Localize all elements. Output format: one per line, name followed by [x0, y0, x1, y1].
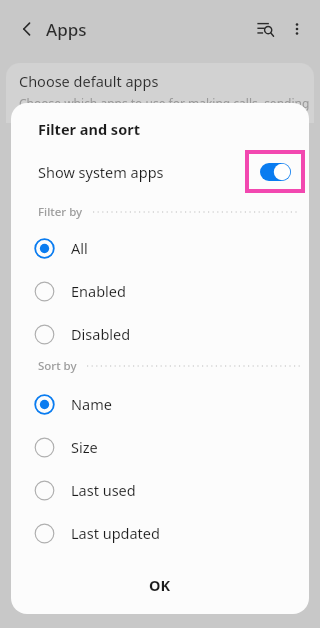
staticText: OK — [149, 575, 171, 595]
button[interactable]: Size — [11, 426, 309, 468]
staticText: Show system apps — [38, 162, 164, 182]
button[interactable]: Name — [11, 383, 309, 425]
button[interactable]: OK — [11, 565, 309, 605]
staticText: Apps — [46, 18, 87, 41]
staticText: Enabled — [71, 281, 126, 301]
staticText: Filter and sort — [38, 119, 140, 139]
button[interactable]: Back — [12, 14, 42, 44]
staticText: Disabled — [71, 324, 131, 344]
staticText: Sort by — [38, 358, 77, 374]
button[interactable]: Show system apps — [11, 151, 309, 193]
staticText: Choose which apps to use for making call… — [19, 95, 310, 111]
button[interactable]: More options — [282, 14, 312, 44]
staticText: Filter by — [38, 204, 83, 220]
staticText: Last used — [71, 480, 136, 500]
button[interactable]: Last updated — [11, 512, 309, 554]
staticText: Size — [71, 437, 98, 457]
button[interactable]: Last used — [11, 469, 309, 511]
staticText: Choose default apps — [19, 71, 159, 91]
button[interactable]: All — [11, 227, 309, 269]
button[interactable]: Search — [250, 13, 282, 45]
staticText: All — [71, 238, 88, 258]
staticText: Name — [71, 394, 112, 414]
button[interactable]: Enabled — [11, 270, 309, 312]
staticText: Last updated — [71, 523, 160, 543]
button[interactable]: Show system apps toggle — [247, 152, 303, 191]
button[interactable]: Disabled — [11, 313, 309, 355]
